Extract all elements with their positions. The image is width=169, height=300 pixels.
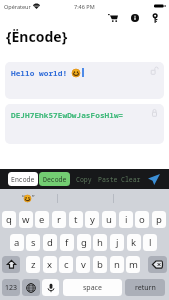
button[interactable]: z [26,256,40,273]
staticText: c [64,258,69,271]
staticText: Opérateur [4,3,31,10]
staticText: x [47,258,53,271]
button[interactable]: d [43,234,57,251]
staticText: Decode [43,175,67,184]
button[interactable]: Copy [76,172,92,186]
staticText: s [31,236,36,249]
staticText: q [6,213,12,226]
button[interactable]: o [135,211,149,228]
button[interactable]: a [10,234,24,251]
button[interactable]: Unlock [150,66,159,75]
button[interactable]: j [110,234,124,251]
button[interactable]: Send [145,173,162,186]
button[interactable]: y [85,211,99,228]
staticText: y [90,213,95,226]
staticText: j [116,236,119,249]
staticText: w [22,213,30,226]
button[interactable]: return [125,279,165,296]
button[interactable]: u [102,211,116,228]
button[interactable]: Paste [98,172,118,186]
staticText: Clear [121,175,141,184]
staticText: return [135,283,156,293]
staticText: g [81,236,87,249]
staticText: d [47,236,53,249]
staticText: n [114,258,120,271]
button[interactable]: Store [104,13,122,23]
button[interactable]: Clear [121,172,141,186]
button[interactable]: q [2,211,16,228]
button[interactable]: Shift [2,256,20,273]
button[interactable]: Info [127,13,143,23]
button[interactable]: Key [147,13,163,23]
button[interactable]: Emoji keyboard [22,279,40,296]
staticText: m [129,258,138,271]
button[interactable]: h [93,234,107,251]
staticText: “ [22,193,25,203]
button[interactable]: m [126,256,140,273]
staticText: i [125,213,128,226]
button[interactable]: l [143,234,157,251]
staticText: ” [32,193,35,203]
button[interactable]: n [110,256,124,273]
staticText: 123 [5,283,18,293]
staticText: {Ëncode} [6,27,68,46]
button[interactable]: r [52,211,66,228]
button[interactable]: Encode [8,172,38,186]
staticText: Hello world! [11,68,72,79]
button[interactable]: “ [0,189,57,208]
staticText: o [139,213,145,226]
staticText: Copy [76,175,92,184]
staticText: b [97,258,103,271]
staticText: space [83,283,102,293]
staticText: l [149,236,152,249]
button[interactable]: e [35,211,49,228]
staticText: k [131,236,137,249]
button[interactable]: 123 [2,279,20,296]
button[interactable]: Hello world! [5,62,164,99]
button[interactable]: g [77,234,91,251]
button[interactable]: space [63,279,122,296]
staticText: t [74,213,78,226]
staticText: r [57,213,61,226]
button[interactable]: DEJH7Ehk57EwDwJasFosHlw= [5,104,164,144]
button[interactable]: x [43,256,57,273]
staticText: DEJH7Ehk57EwDwJasFosHlw= [11,110,124,121]
staticText: Paste [98,175,118,184]
staticText: Encode [11,175,35,184]
button[interactable]: s [26,234,40,251]
button[interactable]: b [93,256,107,273]
staticText: z [31,258,36,271]
button[interactable]: Lock [150,108,159,118]
button[interactable]: c [59,256,73,273]
staticText: p [156,213,162,226]
button[interactable]: v [76,256,90,273]
button[interactable]: p [152,211,166,228]
staticText: a [14,236,20,249]
button[interactable]: i [119,211,133,228]
button[interactable]: Backspace [148,256,167,273]
button[interactable]: Decode [39,172,70,186]
button[interactable]: Dictate [42,279,59,296]
staticText: v [81,258,86,271]
button[interactable]: f [60,234,74,251]
button[interactable]: k [127,234,141,251]
staticText: u [106,213,112,226]
staticText: e [39,213,45,226]
staticText: 7:46 PM [74,3,95,10]
staticText: f [65,236,69,249]
button[interactable]: w [19,211,33,228]
staticText: h [97,236,103,249]
button[interactable]: t [69,211,83,228]
